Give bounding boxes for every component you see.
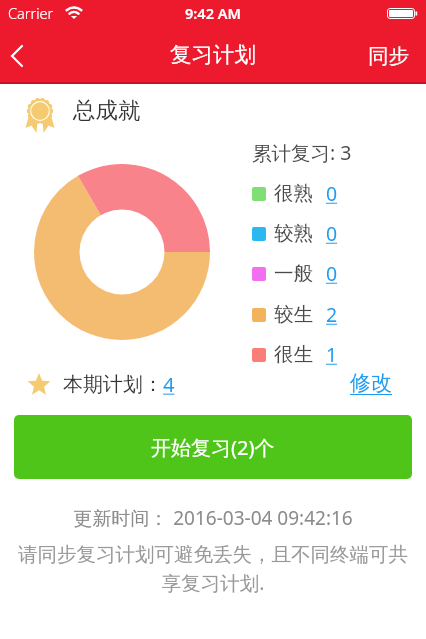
button[interactable]: 0	[326, 220, 338, 247]
button[interactable]	[8, 44, 26, 68]
staticText: 较熟	[274, 221, 313, 246]
staticText: 累计复习: 3	[252, 139, 352, 166]
staticText: 很熟	[274, 181, 313, 206]
button[interactable]: 1	[326, 341, 338, 368]
staticText: Carrier	[8, 3, 54, 23]
staticText: 开始复习(2)个	[151, 434, 275, 461]
button[interactable]: 同步	[368, 43, 409, 69]
staticText: 9:42 AM	[0, 3, 426, 23]
staticText: 很生	[274, 342, 313, 367]
button[interactable]: 0	[326, 260, 338, 287]
button[interactable]: 2	[326, 301, 338, 328]
staticText: 本期计划：	[63, 372, 163, 397]
staticText: 更新时间： 2016-03-04 09:42:16	[0, 505, 426, 531]
button[interactable]: 0	[326, 180, 338, 207]
staticText: 较生	[274, 302, 313, 327]
staticText: 请同步复习计划可避免丢失，且不同终端可共	[0, 542, 426, 567]
staticText: 总成就	[73, 96, 141, 124]
button[interactable]: 修改	[350, 370, 392, 396]
button[interactable]: 开始复习(2)个	[14, 415, 412, 479]
button[interactable]: 4	[163, 371, 175, 398]
staticText: 享复习计划.	[0, 569, 426, 596]
staticText: 一般	[274, 261, 313, 286]
staticText: 复习计划	[0, 41, 426, 68]
